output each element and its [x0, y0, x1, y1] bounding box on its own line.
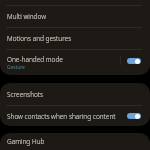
button[interactable]: Multi window	[0, 6, 150, 27]
button[interactable]: Motions and gestures	[0, 28, 150, 49]
button[interactable]: Toggle	[127, 113, 141, 119]
button[interactable]: Show contacts when sharing content	[0, 106, 150, 126]
staticText: Screenshots	[7, 90, 44, 99]
staticText: Show contacts when sharing content	[7, 112, 116, 121]
button[interactable]: Gaming Hub	[0, 133, 150, 150]
staticText: Gaming Hub	[7, 137, 45, 146]
button[interactable]: Toggle	[127, 58, 141, 64]
button[interactable]: Screenshots	[0, 83, 150, 105]
staticText: One-handed mode	[7, 55, 63, 64]
staticText: Gesture	[7, 64, 25, 71]
button[interactable]: One-handed mode	[0, 50, 150, 75]
staticText: Motions and gestures	[7, 34, 72, 43]
staticText: Multi window	[7, 12, 46, 21]
